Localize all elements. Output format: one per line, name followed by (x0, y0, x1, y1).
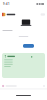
staticText: 9:41 (3, 2, 10, 6)
button[interactable]: Attach (2, 85, 4, 87)
button[interactable]: App icon (2, 13, 5, 16)
button[interactable]: Menu (41, 13, 45, 16)
button[interactable]: Your message (23, 44, 34, 48)
